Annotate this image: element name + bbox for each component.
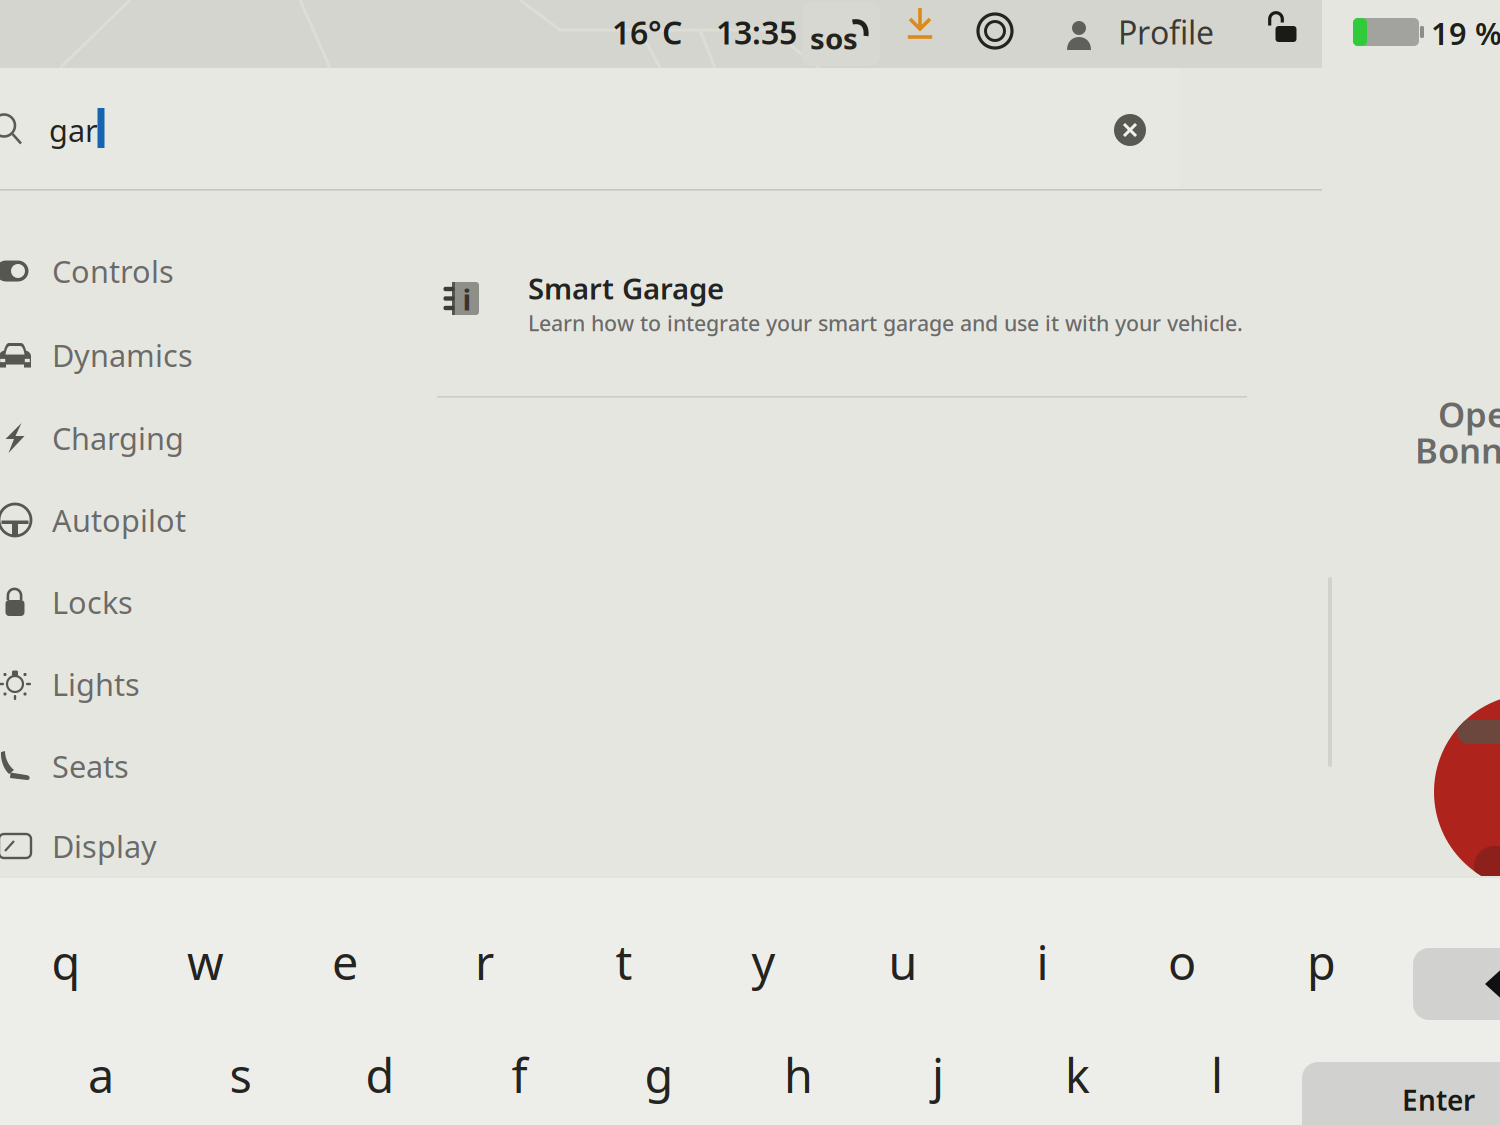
staticText: f	[511, 1044, 527, 1106]
staticText: Smart Garage	[528, 268, 724, 307]
staticText: Display	[52, 826, 157, 866]
staticText: k	[1065, 1044, 1090, 1106]
staticText: o	[1168, 931, 1196, 993]
button[interactable]: d	[325, 1029, 435, 1121]
staticText: a	[88, 1044, 114, 1106]
staticText: 19 %	[1431, 13, 1500, 53]
button[interactable]: Seats	[0, 725, 400, 807]
button[interactable]: Lock	[1268, 11, 1298, 43]
staticText: 16°C	[612, 11, 682, 53]
staticText: sos	[810, 18, 858, 57]
staticText: Locks	[52, 582, 133, 622]
staticText: i	[1036, 931, 1048, 993]
staticText: Lights	[52, 664, 140, 704]
button[interactable]: t	[569, 916, 679, 1008]
button[interactable]: i	[440, 262, 1270, 378]
button[interactable]: s	[185, 1029, 295, 1121]
button[interactable]: y	[708, 916, 818, 1008]
staticText: Bonne	[1415, 427, 1500, 473]
staticText: j	[932, 1044, 944, 1106]
button[interactable]: Dashcam	[977, 13, 1013, 49]
button[interactable]: q	[11, 916, 121, 1008]
staticText: Controls	[52, 251, 174, 291]
button[interactable]: p	[1266, 916, 1376, 1008]
button[interactable]: Autopilot	[0, 479, 400, 561]
staticText: 13:35	[716, 11, 797, 53]
staticText: Dynamics	[52, 335, 193, 375]
button[interactable]: a	[46, 1029, 156, 1121]
button[interactable]: Profile	[1062, 8, 1278, 56]
button[interactable]: e	[290, 916, 400, 1008]
button[interactable]: Clear search	[1114, 114, 1146, 146]
staticText: gar	[49, 110, 98, 150]
button[interactable]: gar	[0, 68, 1180, 190]
button[interactable]: r	[429, 916, 539, 1008]
button[interactable]: Software update	[906, 6, 934, 40]
button[interactable]: j	[883, 1029, 993, 1121]
button[interactable]: Charging	[0, 397, 400, 479]
staticText: Enter	[1402, 1081, 1475, 1119]
staticText: t	[615, 931, 632, 993]
button[interactable]: Backspace	[1413, 948, 1500, 1020]
button[interactable]: Emergency SOS	[802, 2, 880, 66]
button[interactable]: Locks	[0, 561, 400, 643]
button[interactable]: Dynamics	[0, 314, 400, 396]
staticText: i	[462, 279, 471, 318]
staticText: q	[51, 931, 80, 993]
staticText: Autopilot	[52, 500, 186, 540]
button[interactable]: o	[1127, 916, 1237, 1008]
staticText: e	[332, 931, 358, 993]
staticText: Open	[1438, 391, 1500, 437]
staticText: s	[229, 1044, 251, 1106]
staticText: Charging	[52, 418, 184, 458]
button[interactable]: i	[987, 916, 1097, 1008]
staticText: Profile	[1118, 11, 1214, 53]
staticText: g	[644, 1044, 673, 1106]
staticText: Seats	[52, 746, 129, 786]
button[interactable]: g	[604, 1029, 714, 1121]
button[interactable]: Controls	[0, 230, 400, 312]
button[interactable]: u	[848, 916, 958, 1008]
button[interactable]: Lights	[0, 643, 400, 725]
staticText: Learn how to integrate your smart garage…	[528, 309, 1243, 337]
staticText: d	[365, 1044, 394, 1106]
button[interactable]: k	[1022, 1029, 1132, 1121]
button[interactable]: Battery 19 percent	[1347, 8, 1500, 56]
staticText: h	[784, 1044, 813, 1106]
staticText: l	[1211, 1044, 1223, 1106]
staticText: r	[475, 931, 494, 993]
button[interactable]: f	[464, 1029, 574, 1121]
staticText: y	[751, 931, 775, 993]
staticText: u	[888, 931, 917, 993]
button[interactable]: w	[150, 916, 260, 1008]
button[interactable]: l	[1162, 1029, 1272, 1121]
button[interactable]: h	[743, 1029, 853, 1121]
button[interactable]: Enter	[1302, 1062, 1500, 1125]
staticText: p	[1307, 931, 1336, 993]
staticText: w	[187, 931, 224, 993]
button[interactable]: Display	[0, 805, 400, 887]
